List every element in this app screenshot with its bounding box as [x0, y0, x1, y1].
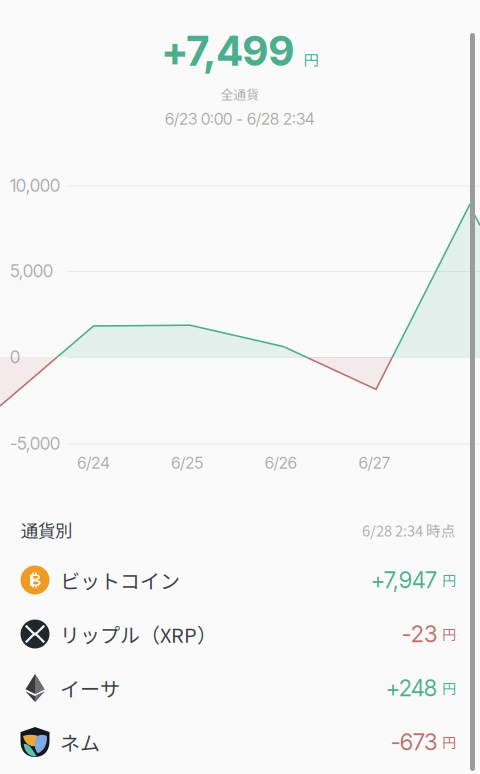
- staticText: 円: [303, 48, 318, 70]
- staticText: +7,947: [371, 566, 437, 594]
- staticText: -673: [391, 728, 437, 756]
- staticText: 円: [442, 624, 456, 644]
- staticText: 6/27: [359, 453, 390, 473]
- button[interactable]: ネム: [0, 715, 480, 769]
- staticText: 0: [10, 346, 20, 367]
- staticText: ネム: [60, 727, 100, 756]
- staticText: +248: [386, 674, 437, 702]
- staticText: 6/24: [77, 453, 110, 473]
- staticText: 6/26: [265, 453, 297, 473]
- button[interactable]: ビットコイン: [0, 553, 480, 607]
- staticText: ビットコイン: [60, 565, 180, 594]
- staticText: -23: [402, 620, 437, 648]
- staticText: 円: [442, 732, 456, 752]
- staticText: 6/28 2:34 時点: [362, 519, 456, 541]
- button[interactable]: イーサ: [0, 661, 480, 715]
- staticText: 10,000: [10, 175, 60, 196]
- staticText: -5,000: [10, 433, 60, 454]
- button[interactable]: リップル（XRP）: [0, 607, 480, 661]
- staticText: 通貨別: [21, 517, 72, 543]
- staticText: 全通貨: [220, 85, 259, 103]
- staticText: リップル（XRP）: [60, 619, 217, 648]
- staticText: 5,000: [10, 260, 53, 281]
- staticText: +7,499: [161, 26, 294, 76]
- staticText: イーサ: [60, 673, 120, 702]
- staticText: 6/23 0:00 - 6/28 2:34: [165, 109, 315, 129]
- staticText: 円: [442, 678, 456, 698]
- staticText: 円: [442, 570, 456, 590]
- staticText: 6/25: [171, 453, 203, 473]
